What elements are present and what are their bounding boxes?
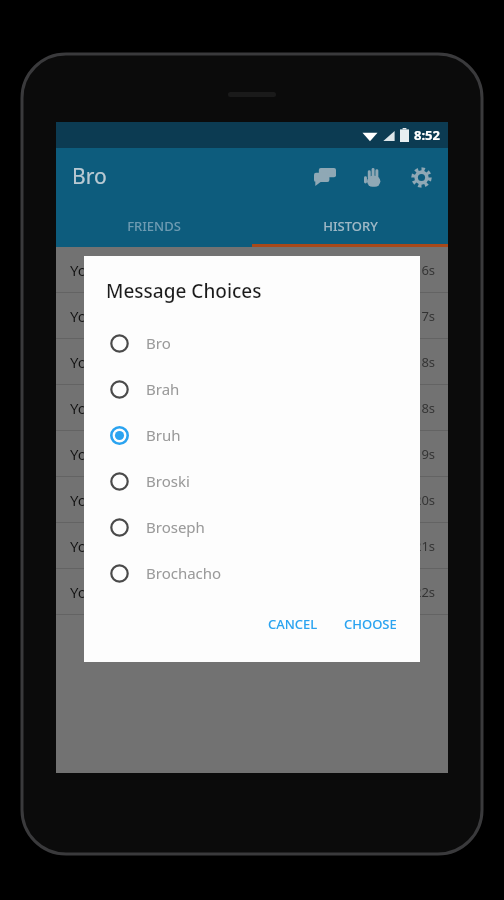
button[interactable]: FRIENDS bbox=[56, 205, 252, 247]
staticText: Bruh bbox=[146, 425, 181, 445]
staticText: 18s bbox=[414, 399, 436, 417]
staticText: Yo dawg bbox=[70, 260, 130, 280]
staticText: 8:52 bbox=[414, 126, 440, 144]
staticText: Broseph bbox=[146, 517, 205, 537]
button[interactable]: Yo dawg bbox=[56, 523, 448, 569]
staticText: Yo dawg bbox=[70, 444, 130, 464]
staticText: CHOOSE bbox=[344, 615, 397, 633]
staticText: 18s bbox=[414, 353, 436, 371]
button[interactable]: Wave bbox=[356, 160, 390, 194]
button[interactable]: Yo dawg bbox=[56, 477, 448, 523]
button[interactable]: Messages bbox=[308, 160, 342, 194]
button[interactable]: Bruh bbox=[84, 412, 420, 458]
staticText: Yo dawg bbox=[70, 582, 130, 602]
staticText: 20s bbox=[414, 491, 436, 509]
staticText: Bro bbox=[72, 162, 107, 191]
staticText: Yo dawg bbox=[70, 306, 130, 326]
button[interactable]: Settings bbox=[404, 160, 438, 194]
button[interactable]: Yo dawg bbox=[56, 385, 448, 431]
button[interactable]: Yo dawg bbox=[56, 247, 448, 293]
staticText: Yo dawg bbox=[70, 490, 130, 510]
staticText: Yo dawg bbox=[70, 536, 130, 556]
button[interactable]: Brochacho bbox=[84, 550, 420, 596]
staticText: 19s bbox=[414, 445, 436, 463]
button[interactable]: Brah bbox=[84, 366, 420, 412]
button[interactable]: Bro bbox=[84, 320, 420, 366]
staticText: Yo dawg bbox=[70, 352, 130, 372]
staticText: Brochacho bbox=[146, 563, 222, 583]
button[interactable]: CANCEL bbox=[259, 608, 327, 640]
staticText: 17s bbox=[414, 307, 436, 325]
button[interactable]: HISTORY bbox=[252, 205, 448, 247]
staticText: 21s bbox=[414, 537, 436, 555]
button[interactable]: CHOOSE bbox=[335, 608, 406, 640]
staticText: 22s bbox=[414, 583, 436, 601]
button[interactable]: Yo dawg bbox=[56, 431, 448, 477]
staticText: CANCEL bbox=[268, 615, 318, 633]
staticText: 16s bbox=[414, 261, 436, 279]
staticText: Brah bbox=[146, 379, 180, 399]
staticText: FRIENDS bbox=[127, 217, 181, 235]
staticText: Message Choices bbox=[106, 278, 262, 304]
staticText: Broski bbox=[146, 471, 190, 491]
staticText: Yo dawg bbox=[70, 398, 130, 418]
staticText: HISTORY bbox=[323, 217, 378, 235]
button[interactable]: Broski bbox=[84, 458, 420, 504]
staticText: Bro bbox=[146, 333, 171, 353]
button[interactable]: Yo dawg bbox=[56, 339, 448, 385]
button[interactable]: Yo dawg bbox=[56, 569, 448, 615]
button[interactable]: Yo dawg bbox=[56, 293, 448, 339]
button[interactable]: Broseph bbox=[84, 504, 420, 550]
